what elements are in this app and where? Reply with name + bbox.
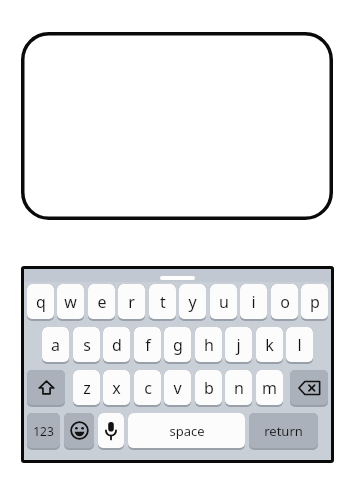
button[interactable]: m xyxy=(256,370,283,407)
staticText: v xyxy=(173,377,182,399)
staticText: d xyxy=(112,334,122,356)
staticText: r xyxy=(128,291,135,313)
staticText: i xyxy=(251,291,256,313)
staticText: l xyxy=(297,334,302,356)
button[interactable]: Backspace xyxy=(290,370,328,407)
button[interactable]: d xyxy=(103,327,130,364)
button[interactable]: f xyxy=(134,327,161,364)
button[interactable]: Voice input xyxy=(98,413,124,450)
staticText: return xyxy=(264,422,303,440)
staticText: m xyxy=(262,377,277,399)
staticText: 123 xyxy=(33,423,54,439)
staticText: space xyxy=(169,422,205,440)
staticText: s xyxy=(83,334,91,356)
button[interactable]: p xyxy=(301,284,328,321)
button[interactable]: 123 xyxy=(27,413,60,450)
button[interactable]: o xyxy=(271,284,298,321)
staticText: q xyxy=(36,291,46,313)
button[interactable]: q xyxy=(27,284,54,321)
button[interactable]: r xyxy=(118,284,145,321)
button[interactable]: c xyxy=(134,370,161,407)
button[interactable]: n xyxy=(225,370,252,407)
button[interactable]: j xyxy=(225,327,252,364)
button[interactable]: i xyxy=(240,284,267,321)
staticText: x xyxy=(112,377,121,399)
staticText: j xyxy=(236,334,241,356)
staticText: y xyxy=(188,291,197,313)
staticText: f xyxy=(145,334,151,356)
button[interactable]: g xyxy=(164,327,191,364)
button[interactable]: s xyxy=(73,327,100,364)
button[interactable]: Keyboard handle xyxy=(160,276,195,280)
button[interactable]: space xyxy=(128,413,245,450)
button[interactable]: x xyxy=(103,370,130,407)
button[interactable]: l xyxy=(286,327,313,364)
staticText: n xyxy=(234,377,244,399)
button[interactable]: t xyxy=(149,284,176,321)
staticText: o xyxy=(280,291,290,313)
button[interactable]: u xyxy=(210,284,237,321)
button[interactable]: Text field xyxy=(19,30,335,222)
button[interactable]: b xyxy=(195,370,222,407)
staticText: e xyxy=(97,291,107,313)
button[interactable]: w xyxy=(57,284,84,321)
button[interactable]: y xyxy=(179,284,206,321)
button[interactable]: h xyxy=(195,327,222,364)
button[interactable]: return xyxy=(249,413,318,450)
staticText: h xyxy=(204,334,214,356)
staticText: k xyxy=(265,334,274,356)
staticText: g xyxy=(173,334,183,356)
button[interactable]: z xyxy=(73,370,100,407)
button[interactable]: k xyxy=(256,327,283,364)
staticText: a xyxy=(51,334,60,356)
staticText: t xyxy=(160,291,166,313)
button[interactable]: Shift xyxy=(27,370,65,407)
button[interactable]: Emoji xyxy=(64,413,94,450)
staticText: z xyxy=(83,377,91,399)
staticText: c xyxy=(144,377,152,399)
staticText: b xyxy=(204,377,214,399)
button[interactable]: e xyxy=(88,284,115,321)
staticText: w xyxy=(64,291,77,313)
staticText: p xyxy=(310,291,320,313)
button[interactable]: v xyxy=(164,370,191,407)
button[interactable]: a xyxy=(42,327,69,364)
staticText: u xyxy=(219,291,229,313)
